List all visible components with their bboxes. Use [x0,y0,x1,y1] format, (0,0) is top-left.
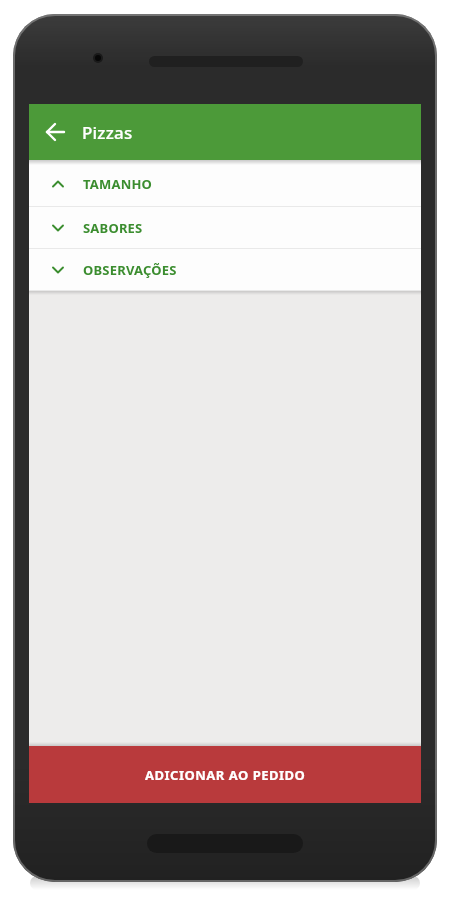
staticText: OBSERVAÇÕES [83,261,177,279]
button[interactable]: SABORES [29,207,421,249]
button[interactable]: TAMANHO [29,160,421,207]
staticText: TAMANHO [83,175,153,193]
staticText: Pizzas [82,121,133,144]
staticText: SABORES [83,219,143,237]
staticText: ADICIONAR AO PEDIDO [145,766,306,784]
button[interactable] [29,104,81,160]
button[interactable]: OBSERVAÇÕES [29,249,421,291]
button[interactable]: ADICIONAR AO PEDIDO [29,746,421,803]
